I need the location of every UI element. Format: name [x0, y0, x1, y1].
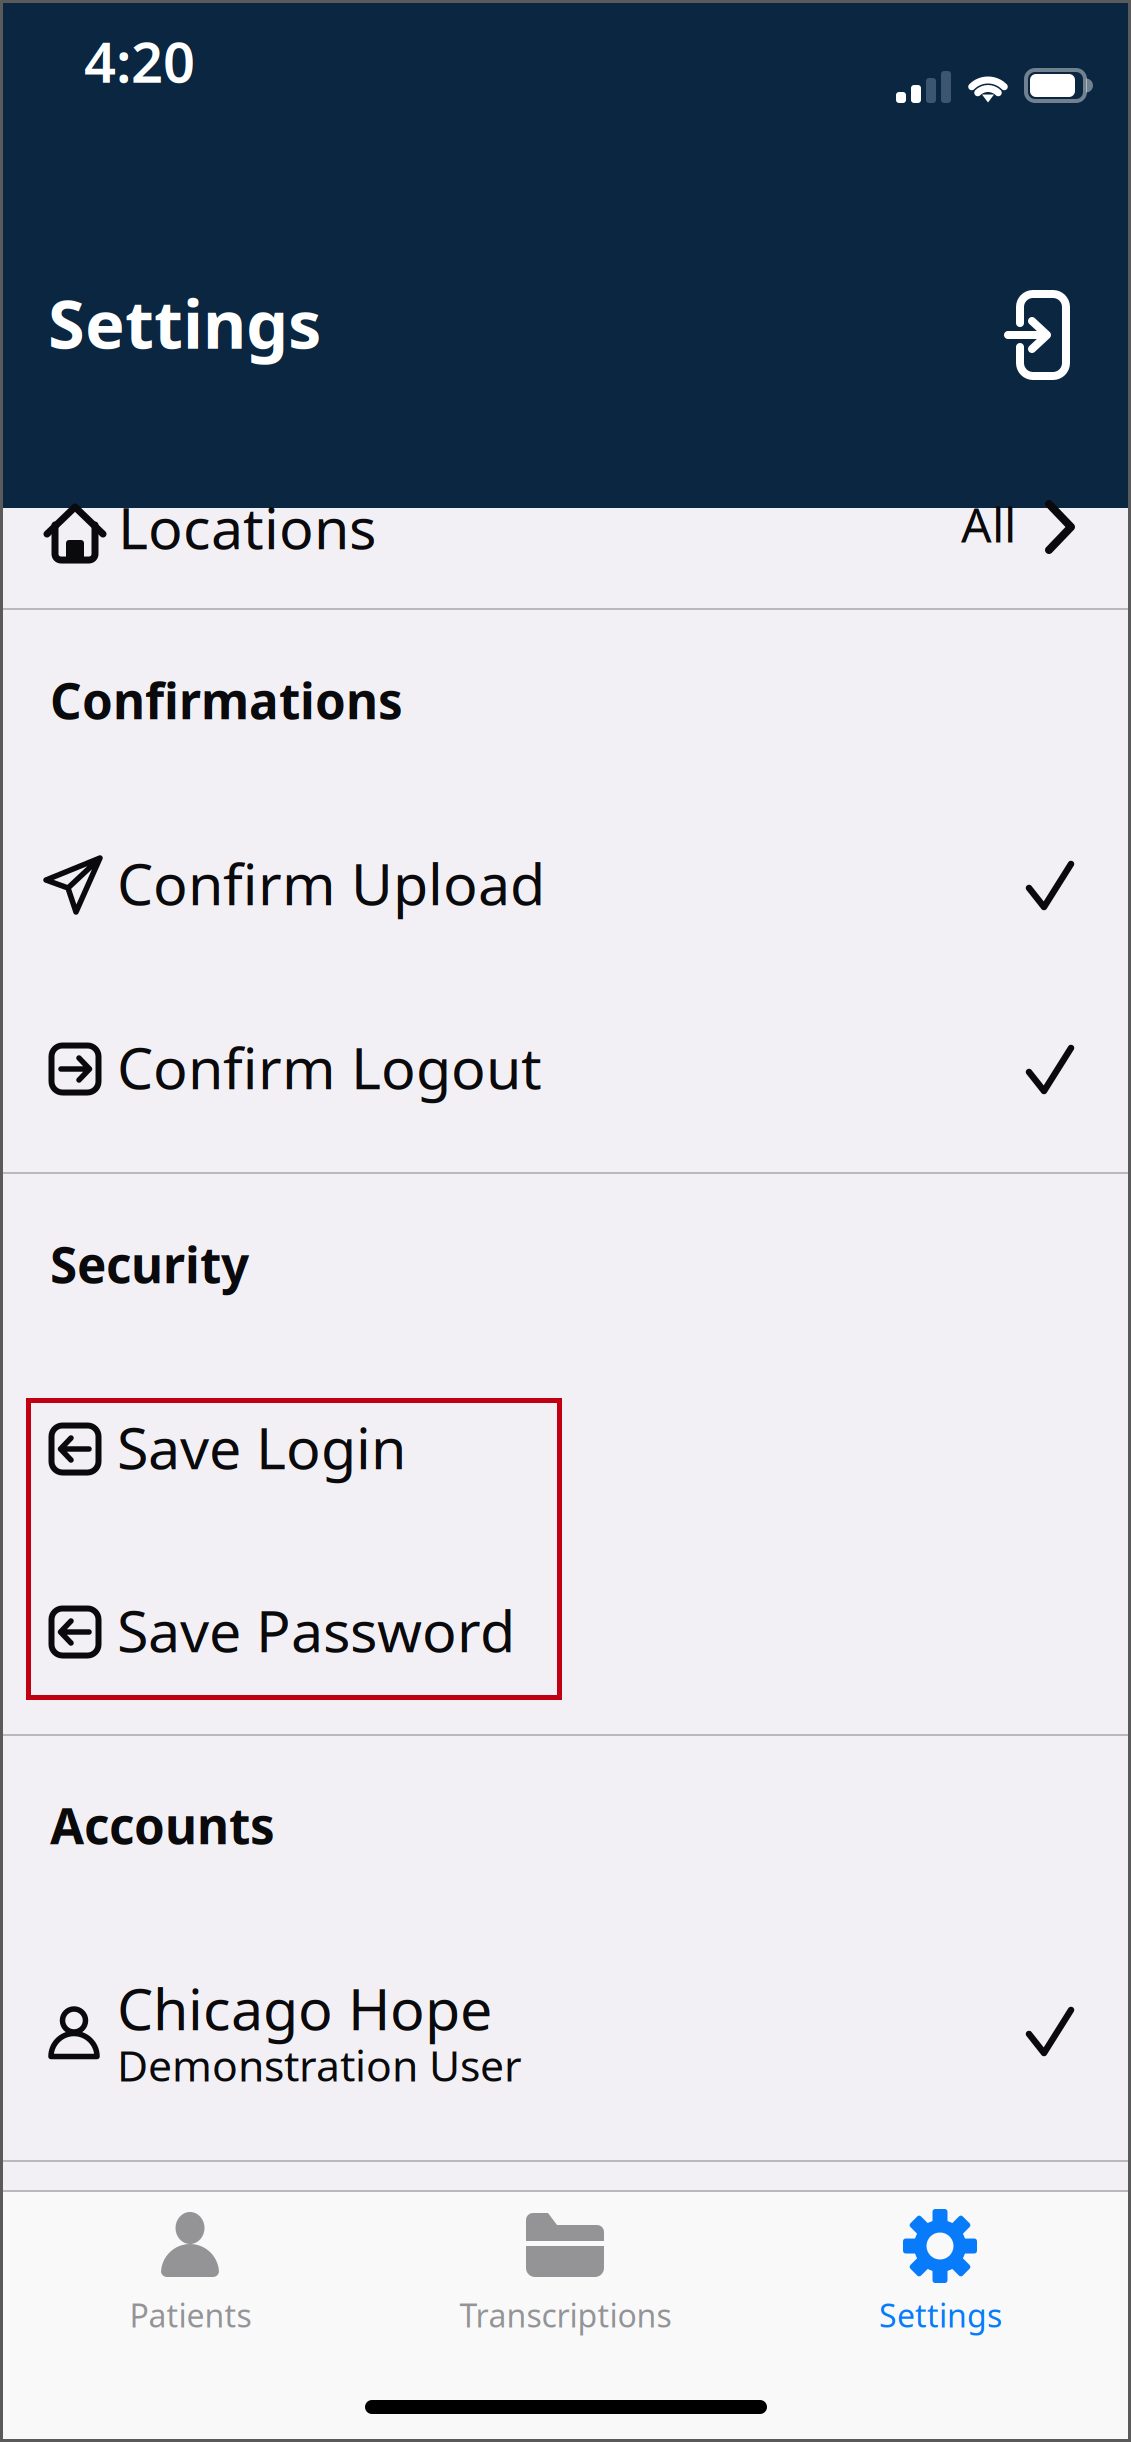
staticText: Locations — [118, 489, 376, 565]
staticText: Settings — [48, 279, 321, 367]
staticText: Chicago Hope — [117, 1970, 492, 2046]
button[interactable]: Confirm Upload — [3, 815, 1128, 959]
staticText: Settings — [879, 2294, 1002, 2336]
staticText: Save Password — [117, 1592, 515, 1668]
button[interactable]: Chicago Hope — [3, 1953, 1128, 2113]
staticText: Confirmations — [50, 667, 403, 733]
button[interactable]: Confirm Logout — [3, 999, 1128, 1143]
staticText: Security — [50, 1231, 249, 1297]
button[interactable]: Log out — [980, 277, 1096, 393]
button[interactable]: Patients — [3, 2193, 378, 2353]
staticText: All — [961, 492, 1016, 556]
staticText: Patients — [129, 2294, 251, 2336]
staticText: Accounts — [50, 1792, 275, 1858]
staticText: Transcriptions — [459, 2294, 671, 2336]
staticText: Confirm Logout — [117, 1029, 542, 1105]
staticText: Save Login — [117, 1409, 406, 1485]
staticText: 4:20 — [84, 24, 195, 98]
button[interactable]: Save Login — [3, 1379, 1128, 1523]
button[interactable]: Save Password — [3, 1562, 1128, 1706]
button[interactable]: Transcriptions — [378, 2193, 753, 2353]
button[interactable]: Locations — [3, 508, 1128, 610]
staticText: Confirm Upload — [117, 845, 545, 921]
staticText: Demonstration User — [117, 2037, 522, 2093]
button[interactable]: Settings — [753, 2193, 1128, 2353]
